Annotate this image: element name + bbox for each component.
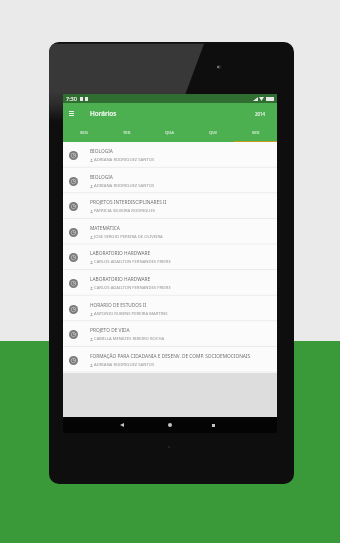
staticText: BIOLOGIA [90,148,113,155]
button[interactable]: Home [162,417,178,433]
staticText: SEX [252,130,260,136]
button[interactable]: Open navigation menu [63,103,79,124]
staticText: TER [123,130,131,136]
button[interactable]: SEG [63,124,105,142]
staticText: ADRIANA RODRIGUEZ SANTOS [94,183,155,189]
button[interactable]: Back [114,417,130,433]
staticText: SEG [80,130,88,136]
button[interactable]: TER [105,124,148,142]
button[interactable]: HORARIO DE ESTUDOS II [63,296,277,322]
button[interactable]: LABORATORIO HARDWARE [63,270,277,296]
staticText: CAMILLA MENEZES RIBEIRO ROCHA [94,336,165,342]
button[interactable]: MATEMÁTICA [63,219,277,245]
staticText: FORMAÇÃO PARA CIDADANIA E DESENV. DE COM… [90,353,251,360]
staticText: JOSE SERGIO PEREIRA DE OLIVEIRA [94,234,163,240]
button[interactable]: QUA [148,124,191,142]
staticText: ANTONIO RUBENS PEREIRA MARTINS [94,311,168,317]
staticText: 2014 [255,111,266,117]
staticText: 7:30 [66,95,77,102]
button[interactable]: LABORATORIO HARDWARE [63,244,277,270]
button[interactable]: QUI [191,124,234,142]
button[interactable]: FORMAÇÃO PARA CIDADANIA E DESENV. DE COM… [63,347,277,373]
staticText: LABORATORIO HARDWARE [90,250,151,257]
staticText: QUA [165,130,175,136]
staticText: PROJETO DE VIDA [90,327,130,334]
staticText: MATEMÁTICA [90,225,120,232]
button[interactable]: Recent apps [205,417,221,433]
staticText: CARLOS ADAILTON FERNANDES FREIRE [94,259,171,265]
staticText: ADRIANA RODRIGUEZ SANTOS [94,362,155,368]
staticText: ADRIANA RODRIGUEZ SANTOS [94,157,155,163]
staticText: PROJETOS INTERDISCIPLINARES II [90,199,167,206]
button[interactable]: BIOLOGIA [63,168,277,194]
staticText: BIOLOGIA [90,174,113,181]
button[interactable]: PROJETOS INTERDISCIPLINARES II [63,193,277,219]
staticText: Horários [90,109,117,118]
staticText: CARLOS ADAILTON FERNANDES FREIRE [94,285,171,291]
button[interactable]: SEX [234,124,277,142]
staticText: LABORATORIO HARDWARE [90,276,151,283]
staticText: HORARIO DE ESTUDOS II [90,302,147,309]
button[interactable]: BIOLOGIA [63,142,277,168]
staticText: QUI [209,130,217,136]
staticText: PATRICIA SILVEIRA RODRIGUES [94,208,156,214]
button[interactable]: PROJETO DE VIDA [63,321,277,347]
